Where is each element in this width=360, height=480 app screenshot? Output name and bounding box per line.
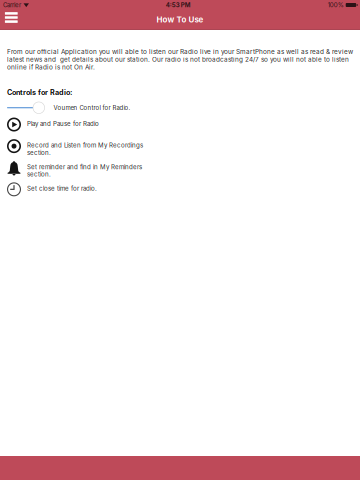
staticText: How To Use [156, 15, 203, 24]
staticText: Record and Listen from My Recordings sec… [27, 142, 143, 156]
staticText: Carrier [3, 1, 21, 9]
staticText: 4:53 PM [166, 1, 191, 9]
staticText: Set close time for radio. [27, 185, 97, 192]
staticText: From our official Application you will a… [7, 48, 353, 71]
staticText: 100% [328, 1, 344, 9]
staticText: Controls for Radio: [7, 88, 72, 97]
staticText: Voumen Control for Radio. [53, 104, 130, 111]
staticText: Play and Pause for Radio [27, 120, 99, 127]
staticText: Set reminder and find in My Reminders se… [27, 163, 142, 178]
button[interactable]: Menu [5, 8, 25, 30]
button[interactable]: Volume slider [7, 101, 47, 114]
